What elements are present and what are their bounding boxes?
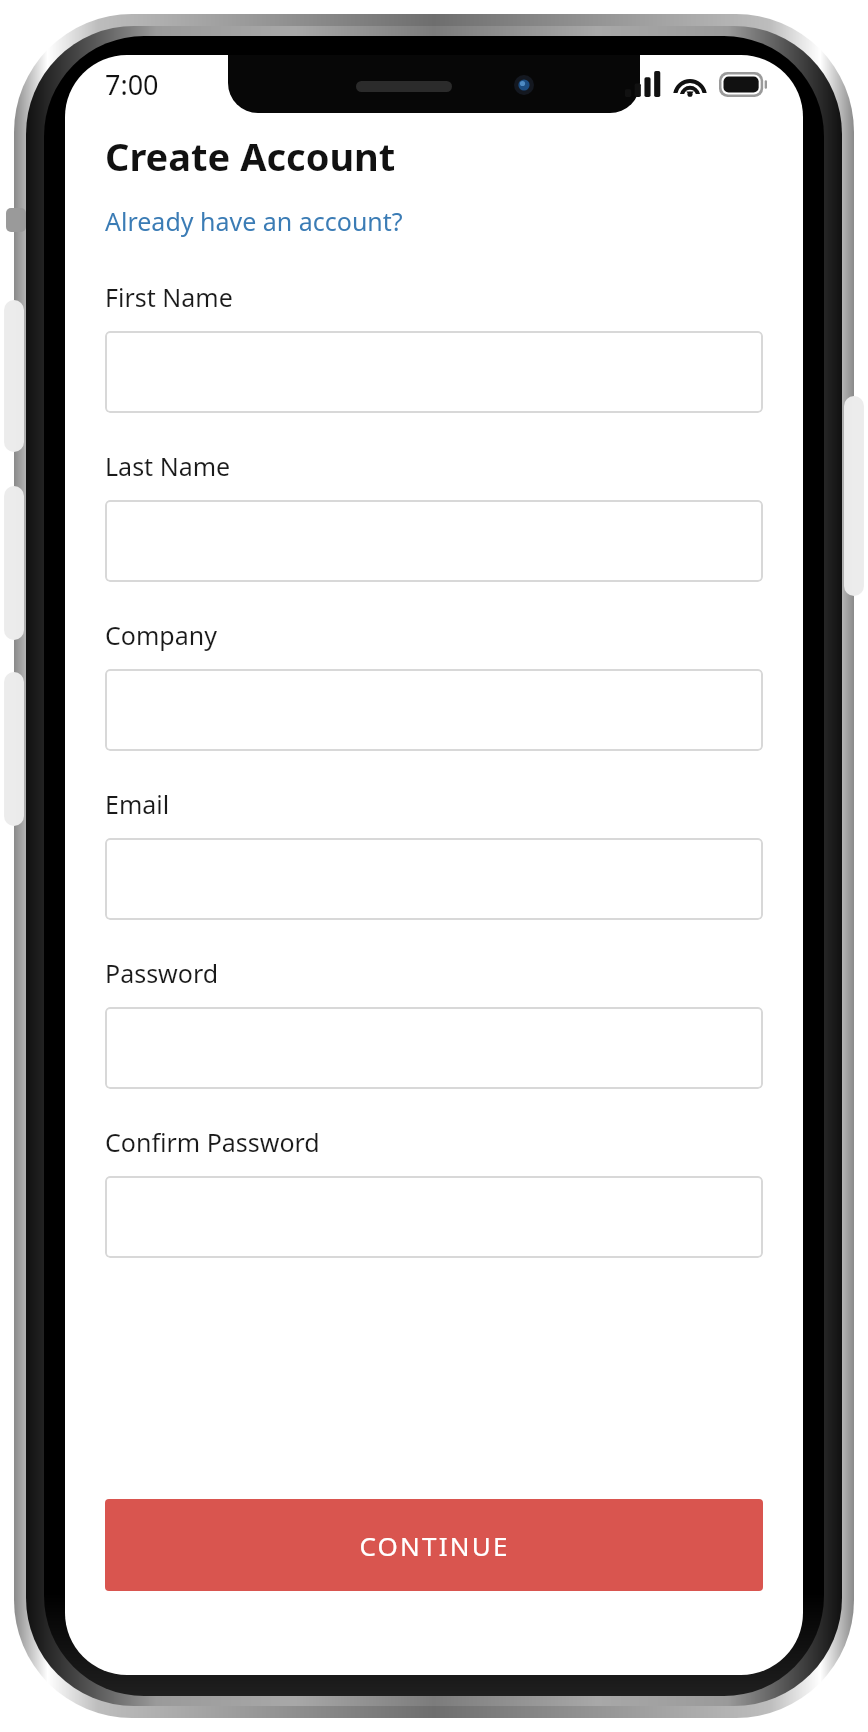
- button[interactable]: [105, 1007, 763, 1089]
- staticText: Email: [105, 787, 170, 821]
- staticText: 7:00: [105, 66, 159, 103]
- staticText: Last Name: [105, 449, 231, 483]
- button[interactable]: [105, 669, 763, 751]
- button[interactable]: [105, 500, 763, 582]
- staticText: CONTINUE: [359, 1528, 510, 1563]
- button[interactable]: Already have an account?: [105, 204, 403, 238]
- staticText: Password: [105, 956, 219, 990]
- staticText: First Name: [105, 280, 233, 314]
- staticText: Company: [105, 618, 217, 652]
- staticText: Create Account: [105, 130, 396, 182]
- button[interactable]: [105, 1176, 763, 1258]
- staticText: Already have an account?: [105, 204, 403, 238]
- button[interactable]: [105, 331, 763, 413]
- staticText: Confirm Password: [105, 1125, 320, 1159]
- button[interactable]: [105, 838, 763, 920]
- button[interactable]: CONTINUE: [105, 1499, 763, 1591]
